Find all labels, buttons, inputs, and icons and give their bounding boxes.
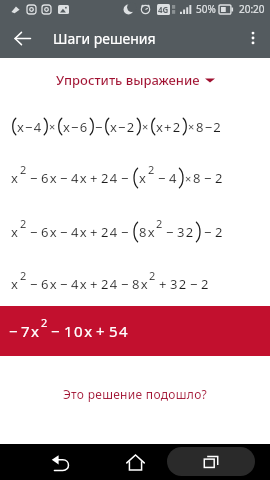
staticText: x+2 [156,118,182,136]
button[interactable]: Back [0,18,44,58]
staticText: Упростить выражение [56,71,200,89]
staticText: 10x [64,321,94,341]
staticText: x [11,223,20,241]
staticText: 24 [101,169,119,187]
staticText: − [158,169,167,187]
staticText: 2 [201,275,210,293]
staticText: 32 [177,223,195,241]
staticText: 4x [71,223,88,241]
staticText: 2 [215,169,224,187]
staticText: + [159,275,168,293]
staticText: Это решение подошло? [63,386,208,402]
staticText: 6x [41,169,58,187]
staticText: x [139,169,148,187]
staticText: 50% [196,2,216,16]
staticText: 7x [21,321,41,341]
button[interactable]: Back [38,444,82,480]
staticText: 6x [41,275,58,293]
staticText: 4x [71,169,88,187]
staticText: Шаги решения [53,29,156,48]
staticText: 8x [139,223,156,241]
staticText: − [60,275,69,293]
staticText: 4G [158,4,169,15]
staticText: 2 [20,268,28,283]
staticText: × [185,171,193,186]
staticText: 8x [132,275,149,293]
staticText: − [204,223,213,241]
staticText: x [11,169,20,187]
staticText: 4 [169,169,178,187]
staticText: 2 [156,216,164,231]
staticText: + [90,275,99,293]
staticText: 8−2 [196,118,222,136]
staticText: 24 [101,223,119,241]
staticText: 4x [71,275,88,293]
staticText: x−6 [63,118,89,136]
button[interactable]: More options [236,18,270,58]
staticText: 2 [215,223,224,241]
staticText: 2 [149,268,157,283]
staticText: 2 [41,315,49,330]
staticText: × [142,119,150,134]
staticText: × [49,119,57,134]
button[interactable]: Recent apps [167,447,255,476]
staticText: − [30,275,39,293]
staticText: 32 [170,275,188,293]
button[interactable]: Это решение подошло? [0,378,270,410]
staticText: 8 [193,169,202,187]
button[interactable]: Упростить выражение [0,58,270,98]
staticText: + [90,223,99,241]
staticText: x−2 [110,118,136,136]
staticText: − [60,169,69,187]
staticText: x−4 [17,118,43,136]
staticText: − [95,118,104,136]
staticText: 54 [109,321,130,341]
staticText: 2 [20,162,28,177]
staticText: − [30,169,39,187]
staticText: 24 [101,275,119,293]
staticText: 6x [41,223,58,241]
staticText: − [166,223,175,241]
staticText: × [188,119,196,134]
staticText: − [30,223,39,241]
staticText: − [121,223,130,241]
button[interactable]: Home [113,444,157,480]
staticText: + [90,169,99,187]
staticText: − [51,321,62,341]
staticText: x [11,275,20,293]
staticText: − [121,169,130,187]
staticText: − [9,321,20,341]
staticText: + [96,321,107,341]
staticText: 2 [148,162,156,177]
staticText: − [121,275,130,293]
staticText: 2 [20,216,28,231]
staticText: − [60,223,69,241]
staticText: 20:20 [239,2,265,16]
staticText: − [204,169,213,187]
staticText: − [190,275,199,293]
